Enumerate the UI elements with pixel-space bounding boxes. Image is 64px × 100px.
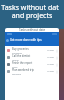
staticText: 12 Sep	[47, 63, 54, 66]
button[interactable]: Call the dentist	[5, 54, 59, 61]
button[interactable]: Buy groceries	[5, 47, 59, 54]
staticText: Plan weekend trip	[12, 68, 34, 72]
button[interactable]: More options	[56, 56, 58, 60]
staticText: Shopping	[12, 52, 22, 54]
staticText: 12 Sep	[47, 56, 54, 59]
staticText: Tasks without date and projects	[0, 3, 64, 20]
staticText: Personal	[12, 73, 21, 75]
button[interactable]: More options	[56, 49, 58, 53]
staticText: Health	[12, 59, 19, 61]
button[interactable]: Finish the report	[5, 61, 59, 68]
button[interactable]: More options	[56, 63, 58, 67]
staticText: Call the dentist	[12, 54, 31, 58]
button[interactable]: More options	[56, 70, 58, 74]
button[interactable]: Plan weekend trip	[5, 68, 59, 75]
staticText: Finish the report	[12, 61, 33, 65]
button[interactable]: Get more done with tips	[5, 32, 59, 46]
staticText: Get more done with tips	[10, 38, 42, 42]
staticText: 12 Sep	[47, 70, 54, 73]
staticText: Tasks without date	[19, 28, 46, 32]
staticText: 12 Sep	[47, 49, 54, 52]
staticText: Buy groceries	[12, 47, 29, 51]
staticText: Work	[12, 66, 18, 68]
